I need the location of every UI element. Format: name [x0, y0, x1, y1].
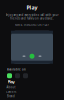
staticText: Brand [7, 94, 15, 98]
staticText: Available on [7, 68, 26, 71]
staticText: About [6, 85, 15, 89]
staticText: Play [7, 79, 14, 84]
staticText: Play [26, 4, 37, 11]
staticText: friends and family on any device. [10, 17, 54, 20]
staticText: NEW & TRENDING ON PLAY [14, 23, 49, 27]
staticText: Enjoy any and every video call with your [5, 13, 58, 17]
staticText: Careers [6, 90, 16, 93]
